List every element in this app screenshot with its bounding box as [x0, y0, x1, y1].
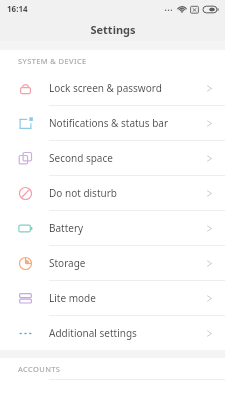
staticText: Storage — [49, 256, 206, 270]
button[interactable]: Additional settings — [0, 316, 225, 350]
staticText: SYSTEM & DEVICE — [18, 56, 87, 66]
button[interactable]: Notifications & status bar — [0, 106, 225, 140]
staticText: Settings — [90, 22, 136, 37]
button[interactable]: Lock screen & password — [0, 71, 225, 105]
staticText: ACCOUNTS — [18, 364, 61, 374]
staticText: Notifications & status bar — [49, 116, 206, 130]
staticText: Lite mode — [49, 291, 206, 305]
staticText: Second space — [49, 151, 206, 165]
button[interactable]: Do not disturb — [0, 176, 225, 210]
button[interactable]: Lite mode — [0, 281, 225, 315]
staticText: Additional settings — [49, 326, 206, 340]
staticText: 16:14 — [7, 3, 28, 14]
button[interactable]: Second space — [0, 141, 225, 175]
button[interactable]: Storage — [0, 246, 225, 280]
staticText: Do not disturb — [49, 186, 206, 200]
staticText: Lock screen & password — [49, 81, 206, 95]
button[interactable]: Battery — [0, 211, 225, 245]
staticText: Battery — [49, 221, 206, 235]
